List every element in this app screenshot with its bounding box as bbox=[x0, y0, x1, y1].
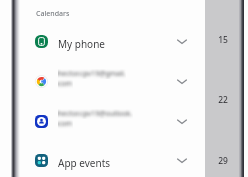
staticText: hector.cpv19@outlook. bbox=[58, 109, 133, 119]
staticText: 29 bbox=[218, 155, 228, 167]
staticText: My phone bbox=[58, 37, 105, 51]
other: Expand bbox=[177, 117, 187, 126]
button[interactable]: My phone bbox=[0, 22, 205, 61]
staticText: hector.cpv19@gmail. bbox=[58, 69, 126, 79]
button[interactable]: App events bbox=[0, 141, 205, 177]
button[interactable]: hector.cpv19@outlook. bbox=[0, 102, 205, 141]
other: Expand bbox=[177, 156, 187, 165]
staticText: App events bbox=[58, 156, 111, 170]
staticText: Calendars bbox=[36, 9, 70, 19]
button[interactable]: hector.cpv19@gmail. bbox=[0, 62, 205, 101]
staticText: 22 bbox=[218, 94, 228, 106]
staticText: 15 bbox=[218, 34, 228, 46]
other: Expand bbox=[177, 77, 187, 86]
staticText: com bbox=[58, 119, 73, 129]
staticText: com bbox=[58, 79, 73, 89]
other: Expand bbox=[177, 37, 187, 46]
